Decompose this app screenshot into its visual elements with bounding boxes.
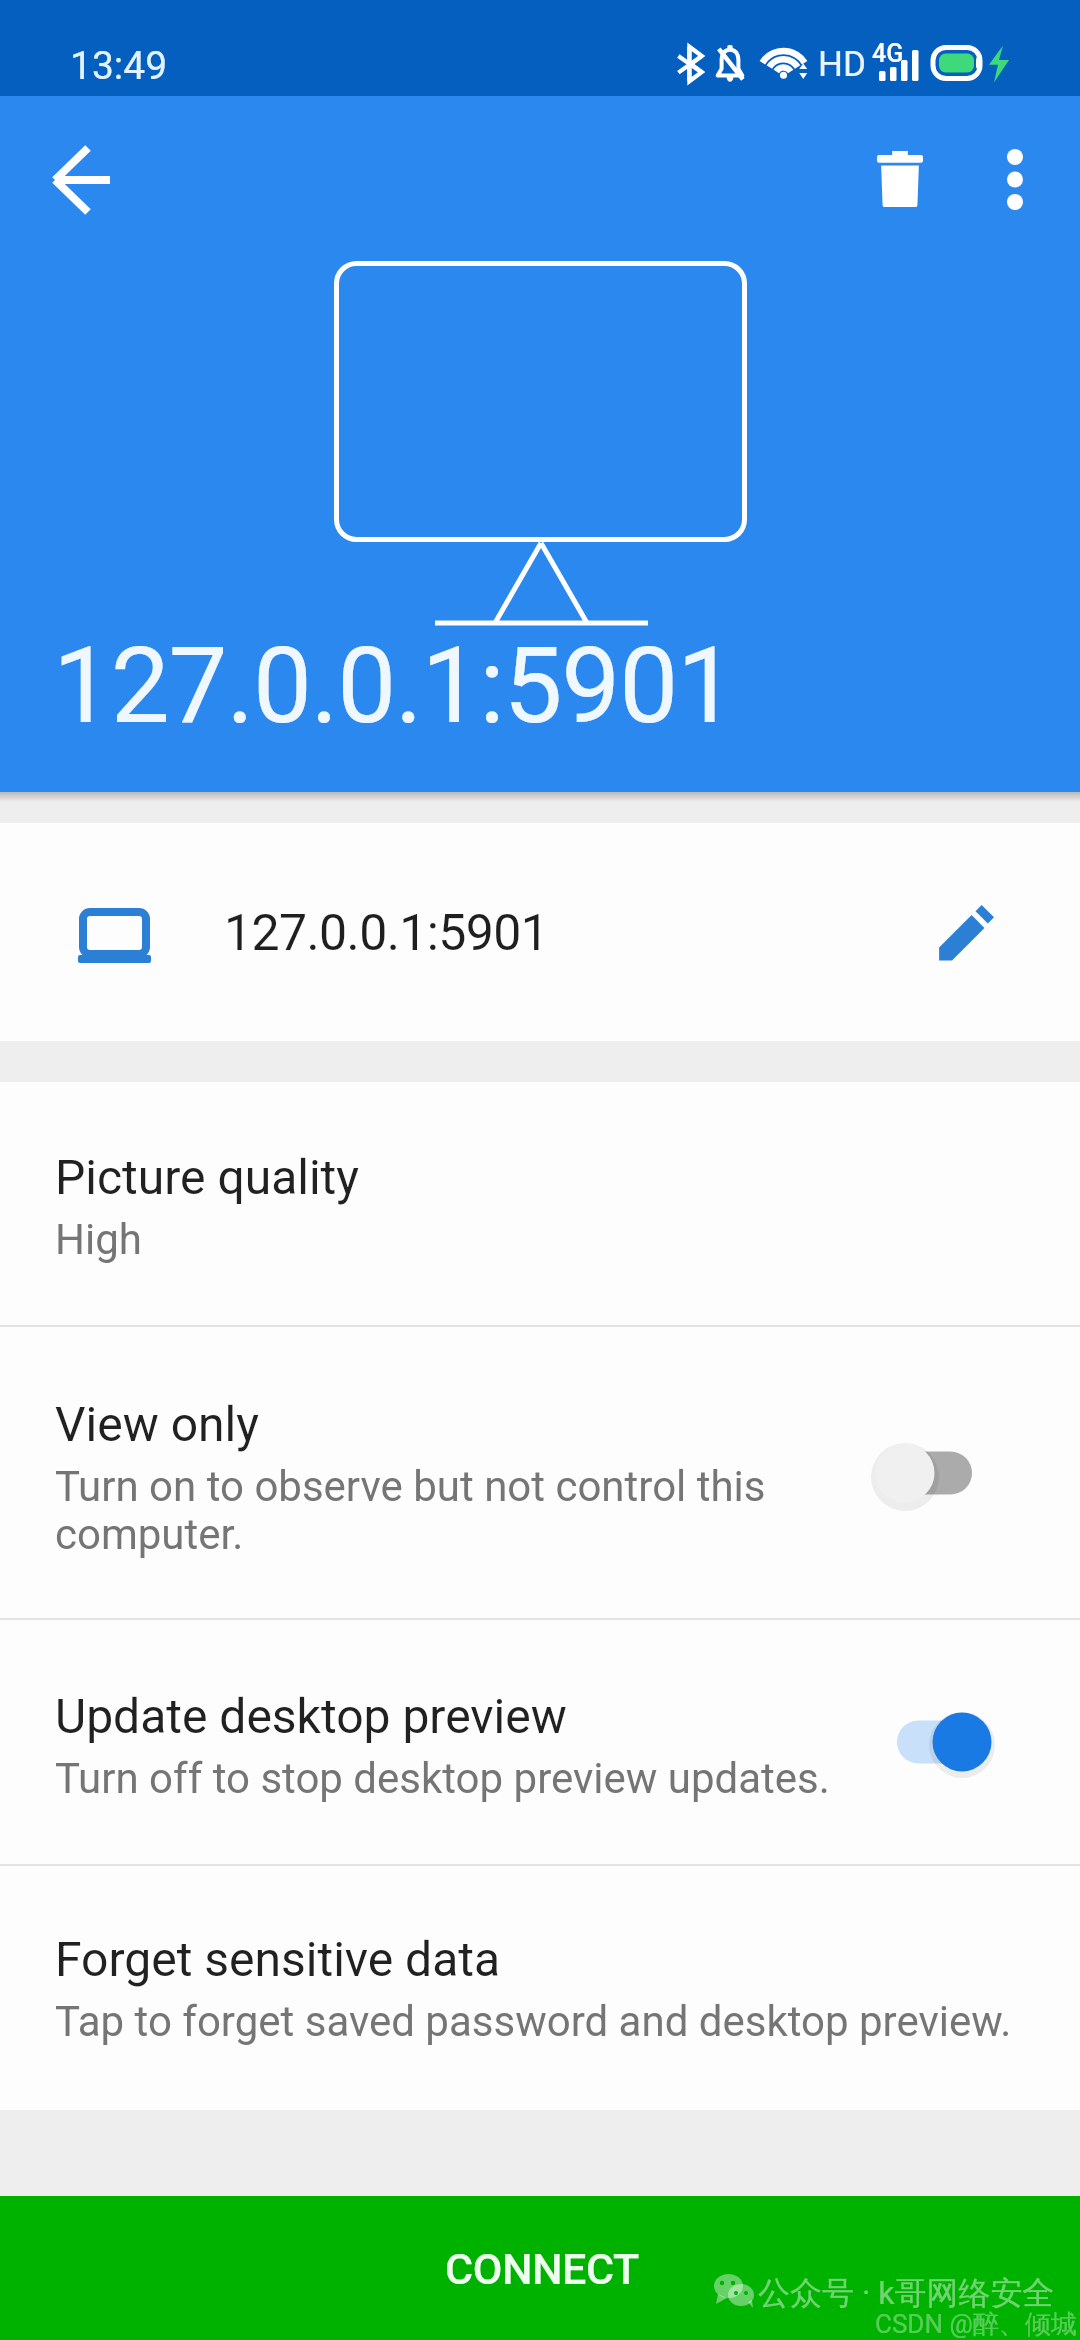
- button[interactable]: Switch on: [864, 1694, 1030, 1790]
- button[interactable]: Forget sensitive data: [0, 1866, 1080, 2110]
- button[interactable]: 127.0.0.1:5901: [0, 823, 1080, 1041]
- staticText: CONNECT: [445, 2244, 639, 2294]
- staticText: 127.0.0.1:5901: [53, 625, 735, 748]
- button[interactable]: View only: [0, 1327, 1080, 1618]
- button[interactable]: Switch off: [867, 1425, 1033, 1521]
- button[interactable]: CONNECT: [0, 2196, 1080, 2340]
- button[interactable]: More options: [968, 132, 1062, 226]
- button[interactable]: Back: [18, 132, 128, 228]
- staticText: Turn on to observe but not control this …: [55, 1462, 810, 1559]
- staticText: CSDN @醉、倾城: [875, 2308, 1077, 2340]
- staticText: 公众号 · k哥网络安全: [758, 2273, 1055, 2313]
- button[interactable]: Delete: [853, 132, 947, 226]
- button[interactable]: Picture quality: [0, 1082, 1080, 1325]
- staticText: HD: [818, 44, 866, 85]
- staticText: View only: [55, 1396, 259, 1452]
- staticText: Forget sensitive data: [55, 1931, 501, 1987]
- button[interactable]: Edit: [922, 889, 1010, 977]
- staticText: Turn off to stop desktop preview updates…: [55, 1754, 830, 1803]
- staticText: 4G: [872, 39, 904, 68]
- button[interactable]: Update desktop preview: [0, 1620, 1080, 1864]
- staticText: Update desktop preview: [55, 1688, 567, 1744]
- staticText: High: [55, 1215, 142, 1264]
- staticText: 127.0.0.1:5901: [224, 904, 549, 963]
- staticText: 13:49: [70, 43, 168, 89]
- staticText: Picture quality: [55, 1149, 360, 1205]
- staticText: Tap to forget saved password and desktop…: [55, 1997, 1012, 2046]
